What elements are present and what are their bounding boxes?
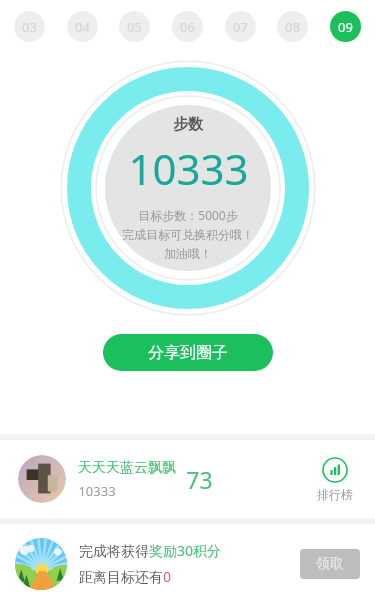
staticText: 步数 bbox=[173, 115, 203, 134]
button[interactable]: 05 bbox=[119, 11, 150, 42]
button[interactable]: 06 bbox=[172, 11, 203, 42]
staticText: 排行榜 bbox=[317, 487, 353, 502]
button[interactable]: 天天天蓝云飘飘 bbox=[0, 440, 375, 518]
staticText: 分享到圈子 bbox=[148, 343, 228, 363]
button[interactable]: 08 bbox=[277, 11, 308, 42]
staticText: 领取 bbox=[316, 555, 344, 573]
staticText: 09 bbox=[338, 18, 353, 36]
staticText: 73 bbox=[186, 464, 213, 495]
staticText: 03 bbox=[22, 18, 37, 36]
staticText: 距离目标还有0 bbox=[79, 567, 172, 586]
staticText: 04 bbox=[75, 18, 90, 36]
staticText: 06 bbox=[180, 18, 195, 36]
button[interactable]: 07 bbox=[225, 11, 256, 42]
staticText: 08 bbox=[285, 18, 300, 36]
button[interactable]: 领取 bbox=[300, 549, 360, 579]
staticText: 加油哦！ bbox=[164, 246, 212, 261]
button[interactable]: 03 bbox=[14, 11, 45, 42]
staticText: 07 bbox=[233, 18, 248, 36]
staticText: 目标步数：5000步 bbox=[138, 207, 238, 223]
staticText: 10333 bbox=[78, 482, 116, 500]
staticText: 天天天蓝云飘飘 bbox=[78, 459, 176, 477]
staticText: 完成将获得奖励30积分 bbox=[79, 541, 222, 560]
staticText: 完成目标可兑换积分哦！ bbox=[122, 227, 254, 242]
button[interactable]: 分享到圈子 bbox=[103, 334, 273, 371]
button[interactable]: 09 bbox=[330, 11, 361, 42]
button[interactable]: 04 bbox=[67, 11, 98, 42]
button[interactable]: 排行榜 bbox=[313, 453, 357, 506]
staticText: 10333 bbox=[128, 140, 249, 197]
staticText: 05 bbox=[127, 18, 142, 36]
